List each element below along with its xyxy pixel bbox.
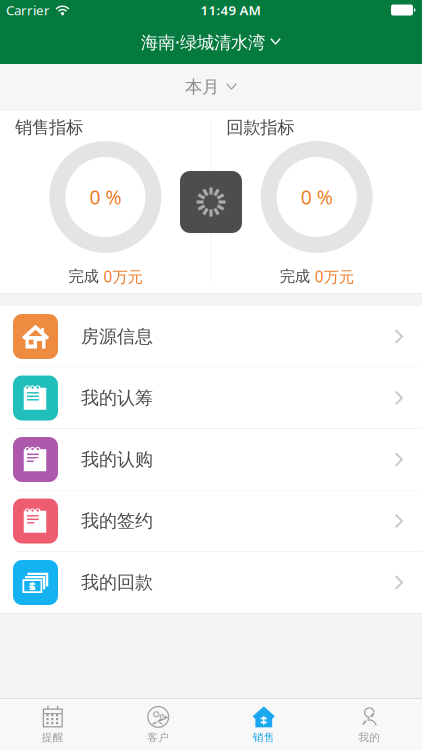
button[interactable]: 客户 xyxy=(105,699,211,750)
staticText: 0 % xyxy=(89,184,121,210)
staticText: 我的回款 xyxy=(81,571,153,594)
staticText: 0万元 xyxy=(103,266,142,287)
staticText: 海南·绿城清水湾 xyxy=(141,30,265,53)
button[interactable]: 我的认购 xyxy=(0,429,422,490)
staticText: 房源信息 xyxy=(81,325,153,348)
staticText: 我的认筹 xyxy=(81,387,153,409)
button[interactable]: 我的签约 xyxy=(0,490,422,551)
staticText: 销售 xyxy=(253,731,275,744)
button[interactable]: 我的 xyxy=(316,699,422,750)
button[interactable]: 我的回款 xyxy=(0,552,422,613)
staticText: 11:49 AM xyxy=(200,1,260,19)
button[interactable]: 房源信息 xyxy=(0,306,422,367)
staticText: 回款指标 xyxy=(226,117,294,138)
button[interactable]: 我的认筹 xyxy=(0,367,422,428)
staticText: 提醒 xyxy=(42,731,64,744)
staticText: 销售指标 xyxy=(15,117,83,138)
staticText: 我的签约 xyxy=(81,510,153,532)
staticText: 0万元 xyxy=(315,266,354,287)
staticText: 0 % xyxy=(301,184,333,210)
staticText: 我的认购 xyxy=(81,448,153,471)
button[interactable]: 本月 xyxy=(0,64,422,110)
staticText: 本月 xyxy=(185,76,219,98)
staticText: 完成 xyxy=(280,267,310,286)
button[interactable]: 销售 xyxy=(211,699,316,750)
staticText: Carrier xyxy=(6,1,50,19)
button[interactable]: 提醒 xyxy=(0,699,105,750)
staticText: 完成 xyxy=(68,267,98,286)
button[interactable]: 海南·绿城清水湾 xyxy=(0,20,422,64)
staticText: 客户 xyxy=(147,731,169,744)
staticText: 我的 xyxy=(358,731,380,744)
